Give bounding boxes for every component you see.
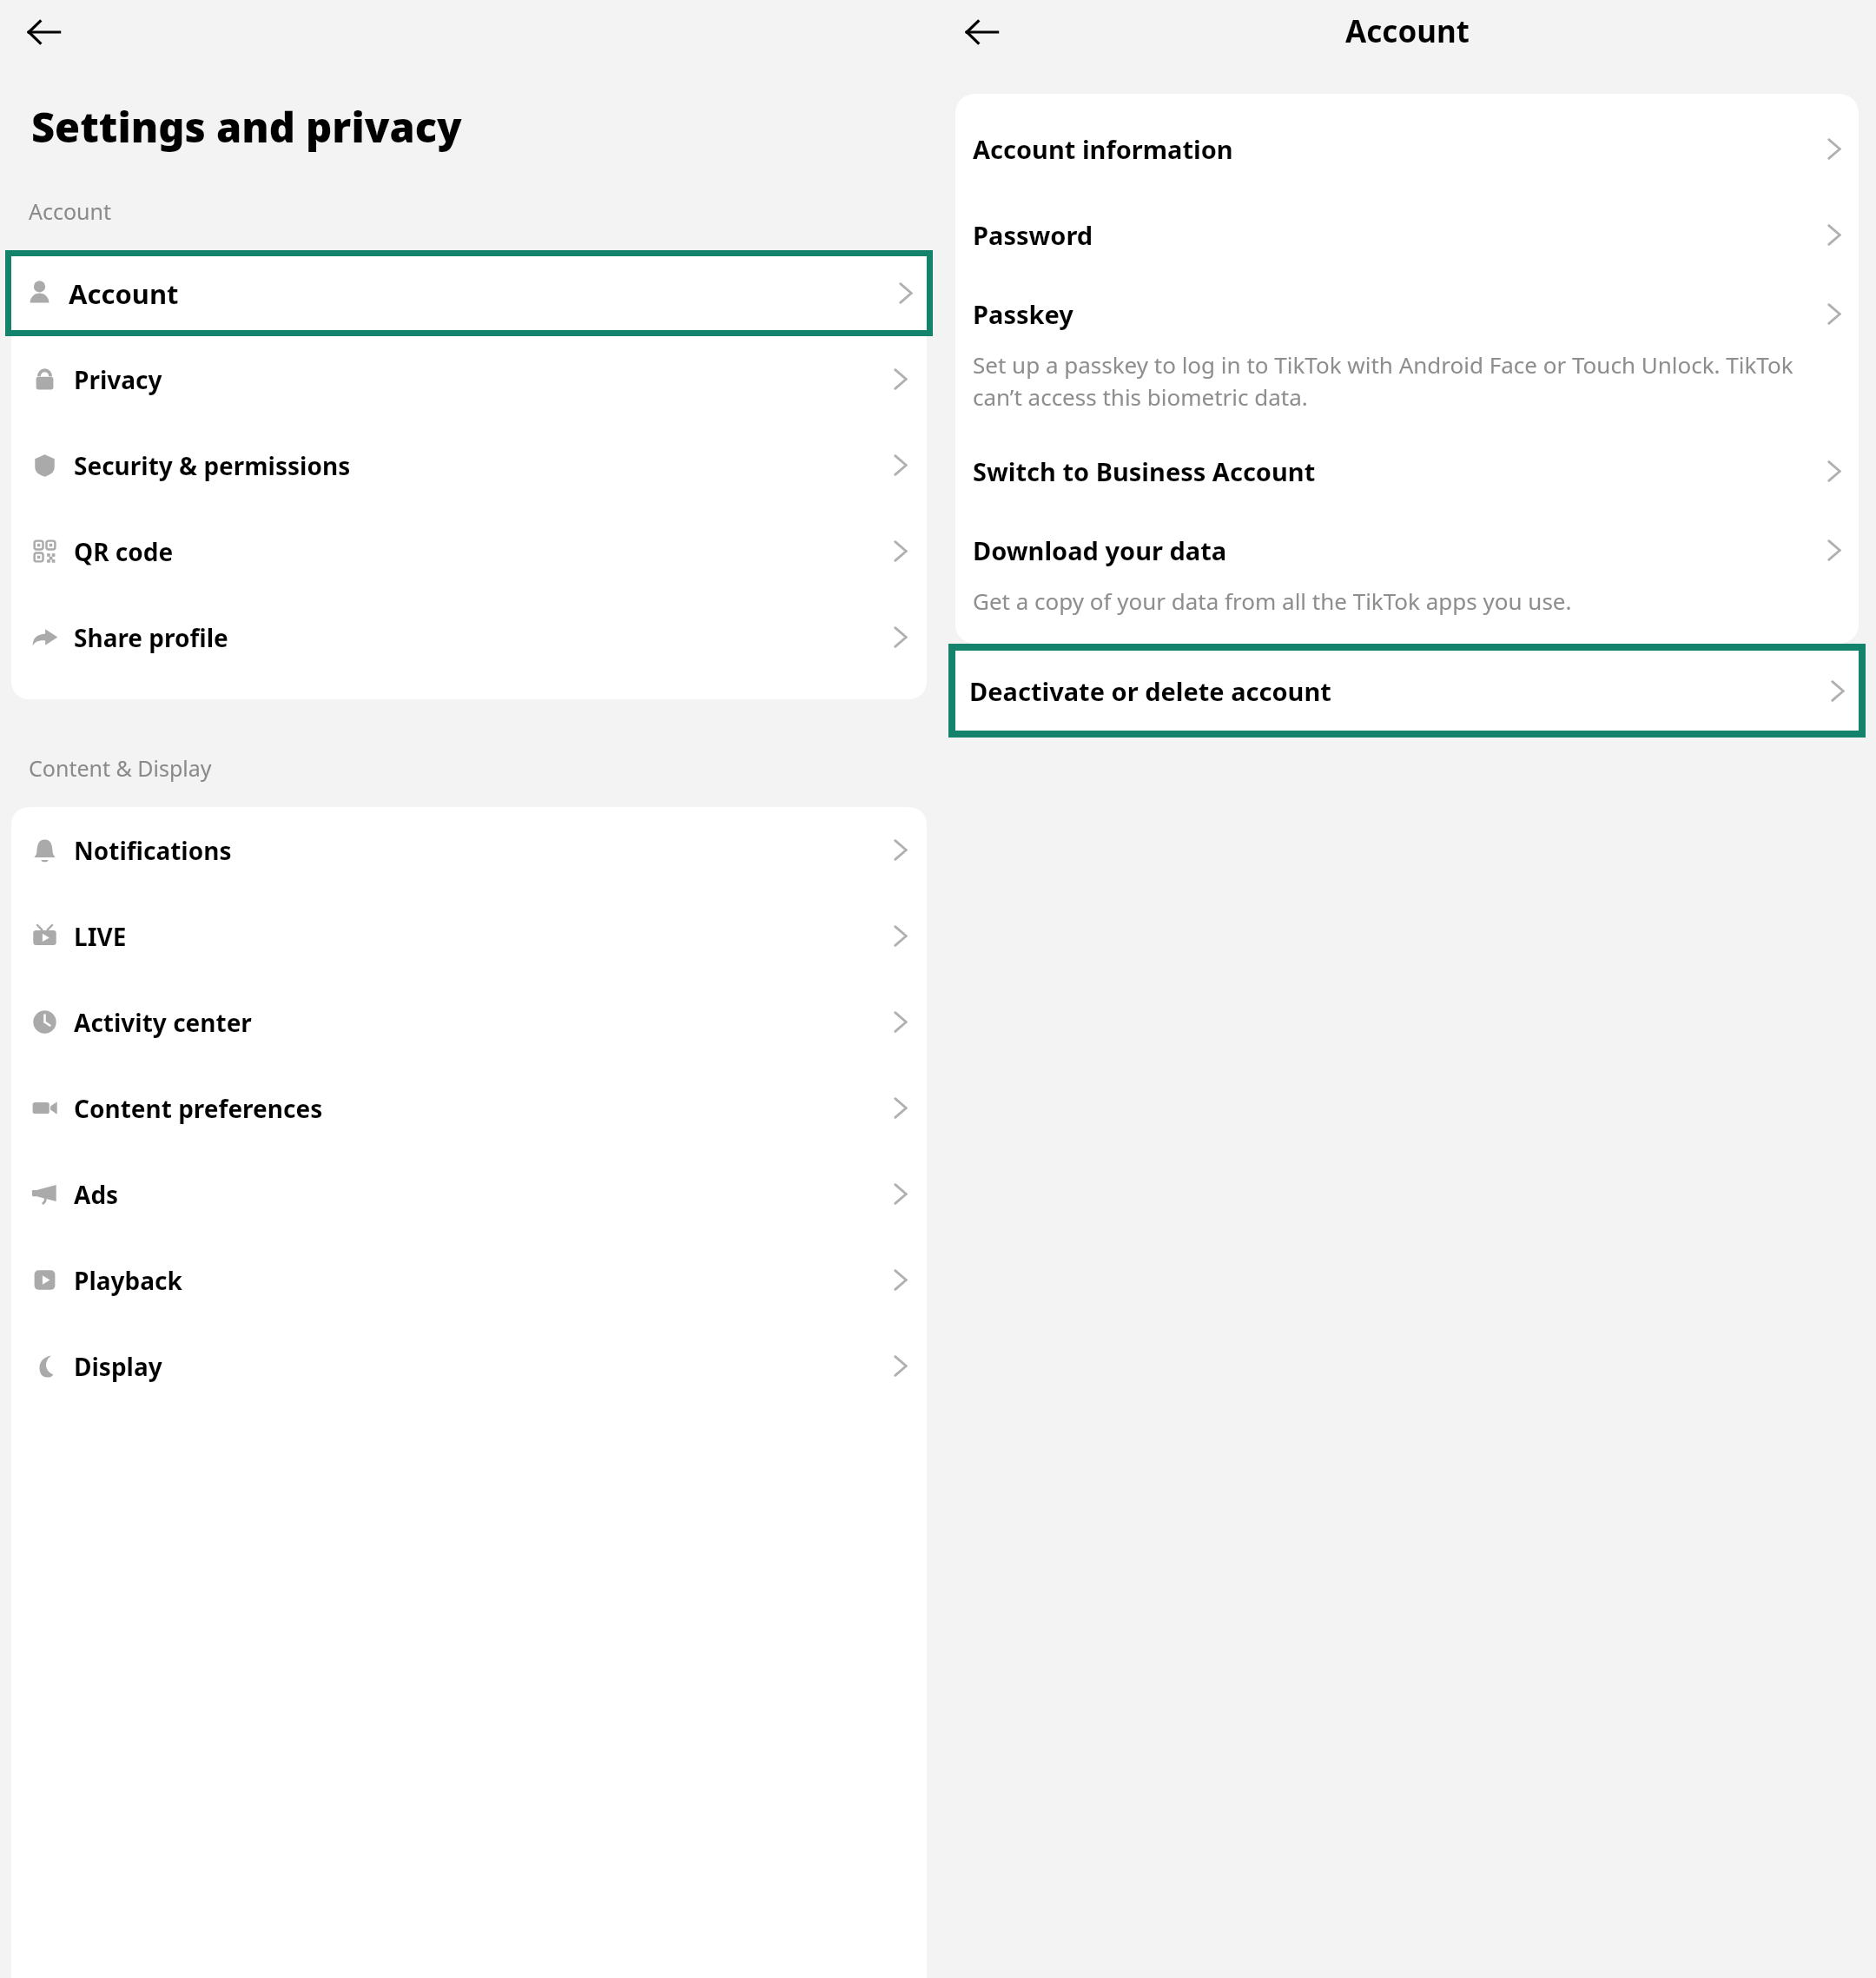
button[interactable]: Playback	[11, 1237, 927, 1323]
staticText: Playback	[74, 1264, 182, 1297]
button[interactable]: Switch to Business Account	[955, 428, 1859, 514]
button[interactable]: Account information	[955, 106, 1859, 192]
button[interactable]: Notifications	[11, 807, 927, 893]
staticText: Passkey	[973, 297, 1073, 331]
button[interactable]: Security & permissions	[11, 422, 927, 508]
staticText: LIVE	[74, 920, 127, 953]
button[interactable]: Back	[17, 6, 69, 57]
staticText: Set up a passkey to log in to TikTok wit…	[973, 349, 1833, 413]
staticText: Content & Display	[29, 753, 212, 783]
staticText: Account	[69, 275, 179, 312]
staticText: Get a copy of your data from all the Tik…	[973, 585, 1572, 616]
staticText: Account	[29, 196, 112, 226]
staticText: Account	[1345, 10, 1470, 52]
staticText: Ads	[74, 1178, 119, 1211]
staticText: Security & permissions	[74, 449, 351, 482]
button[interactable]: Share profile	[11, 594, 927, 680]
button[interactable]: Account	[11, 256, 927, 330]
button[interactable]: Privacy	[11, 336, 927, 422]
staticText: QR code	[74, 535, 174, 568]
staticText: Privacy	[74, 363, 162, 396]
staticText: Download your data	[973, 533, 1227, 567]
button[interactable]: Display	[11, 1323, 927, 1409]
button[interactable]: LIVE	[11, 893, 927, 979]
staticText: Notifications	[74, 834, 232, 867]
staticText: Content preferences	[74, 1092, 323, 1125]
button[interactable]: Download your data	[955, 514, 1859, 632]
staticText: Account information	[973, 132, 1233, 166]
button[interactable]: Activity center	[11, 979, 927, 1065]
staticText: Settings and privacy	[31, 99, 462, 155]
button[interactable]: Back	[955, 6, 1007, 57]
button[interactable]: Password	[955, 192, 1859, 278]
button[interactable]: Passkey	[955, 278, 1859, 428]
staticText: Activity center	[74, 1006, 252, 1039]
button[interactable]: Content preferences	[11, 1065, 927, 1151]
staticText: Switch to Business Account	[973, 454, 1316, 488]
button[interactable]: Ads	[11, 1151, 927, 1237]
staticText: Deactivate or delete account	[969, 674, 1331, 708]
staticText: Password	[973, 218, 1093, 252]
button[interactable]: QR code	[11, 508, 927, 594]
button[interactable]: Deactivate or delete account	[955, 651, 1859, 731]
staticText: Share profile	[74, 621, 228, 654]
staticText: Display	[74, 1350, 162, 1383]
